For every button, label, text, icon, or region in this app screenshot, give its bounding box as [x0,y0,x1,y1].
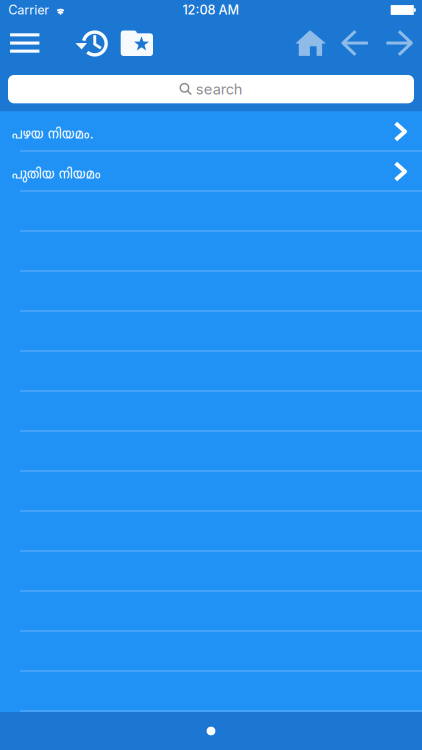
button[interactable] [0,471,422,511]
staticText: Carrier [8,2,49,18]
button[interactable]: പഴയ നിയമം. [0,111,422,151]
button[interactable]: search [0,66,422,111]
button[interactable] [0,431,422,471]
button[interactable] [0,231,422,271]
button[interactable]: Home [295,20,326,66]
button[interactable]: Back [343,20,368,66]
button[interactable] [0,631,422,671]
button[interactable]: Bookmarks [121,20,153,66]
button[interactable] [0,311,422,351]
button[interactable] [0,391,422,431]
button[interactable] [0,511,422,551]
button[interactable] [0,591,422,631]
button[interactable]: പുതിയ നിയമം [0,151,422,191]
button[interactable] [0,271,422,311]
button[interactable] [0,191,422,231]
staticText: പഴയ നിയമം. [12,126,94,144]
button[interactable] [0,351,422,391]
staticText: search [196,80,243,98]
button[interactable]: History [75,20,107,66]
button[interactable] [0,551,422,591]
button[interactable]: Menu [10,20,39,66]
button[interactable]: Forward [386,20,412,66]
staticText: 12:08 AM [182,2,239,18]
staticText: പുതിയ നിയമം [12,166,101,184]
button[interactable] [0,671,422,711]
